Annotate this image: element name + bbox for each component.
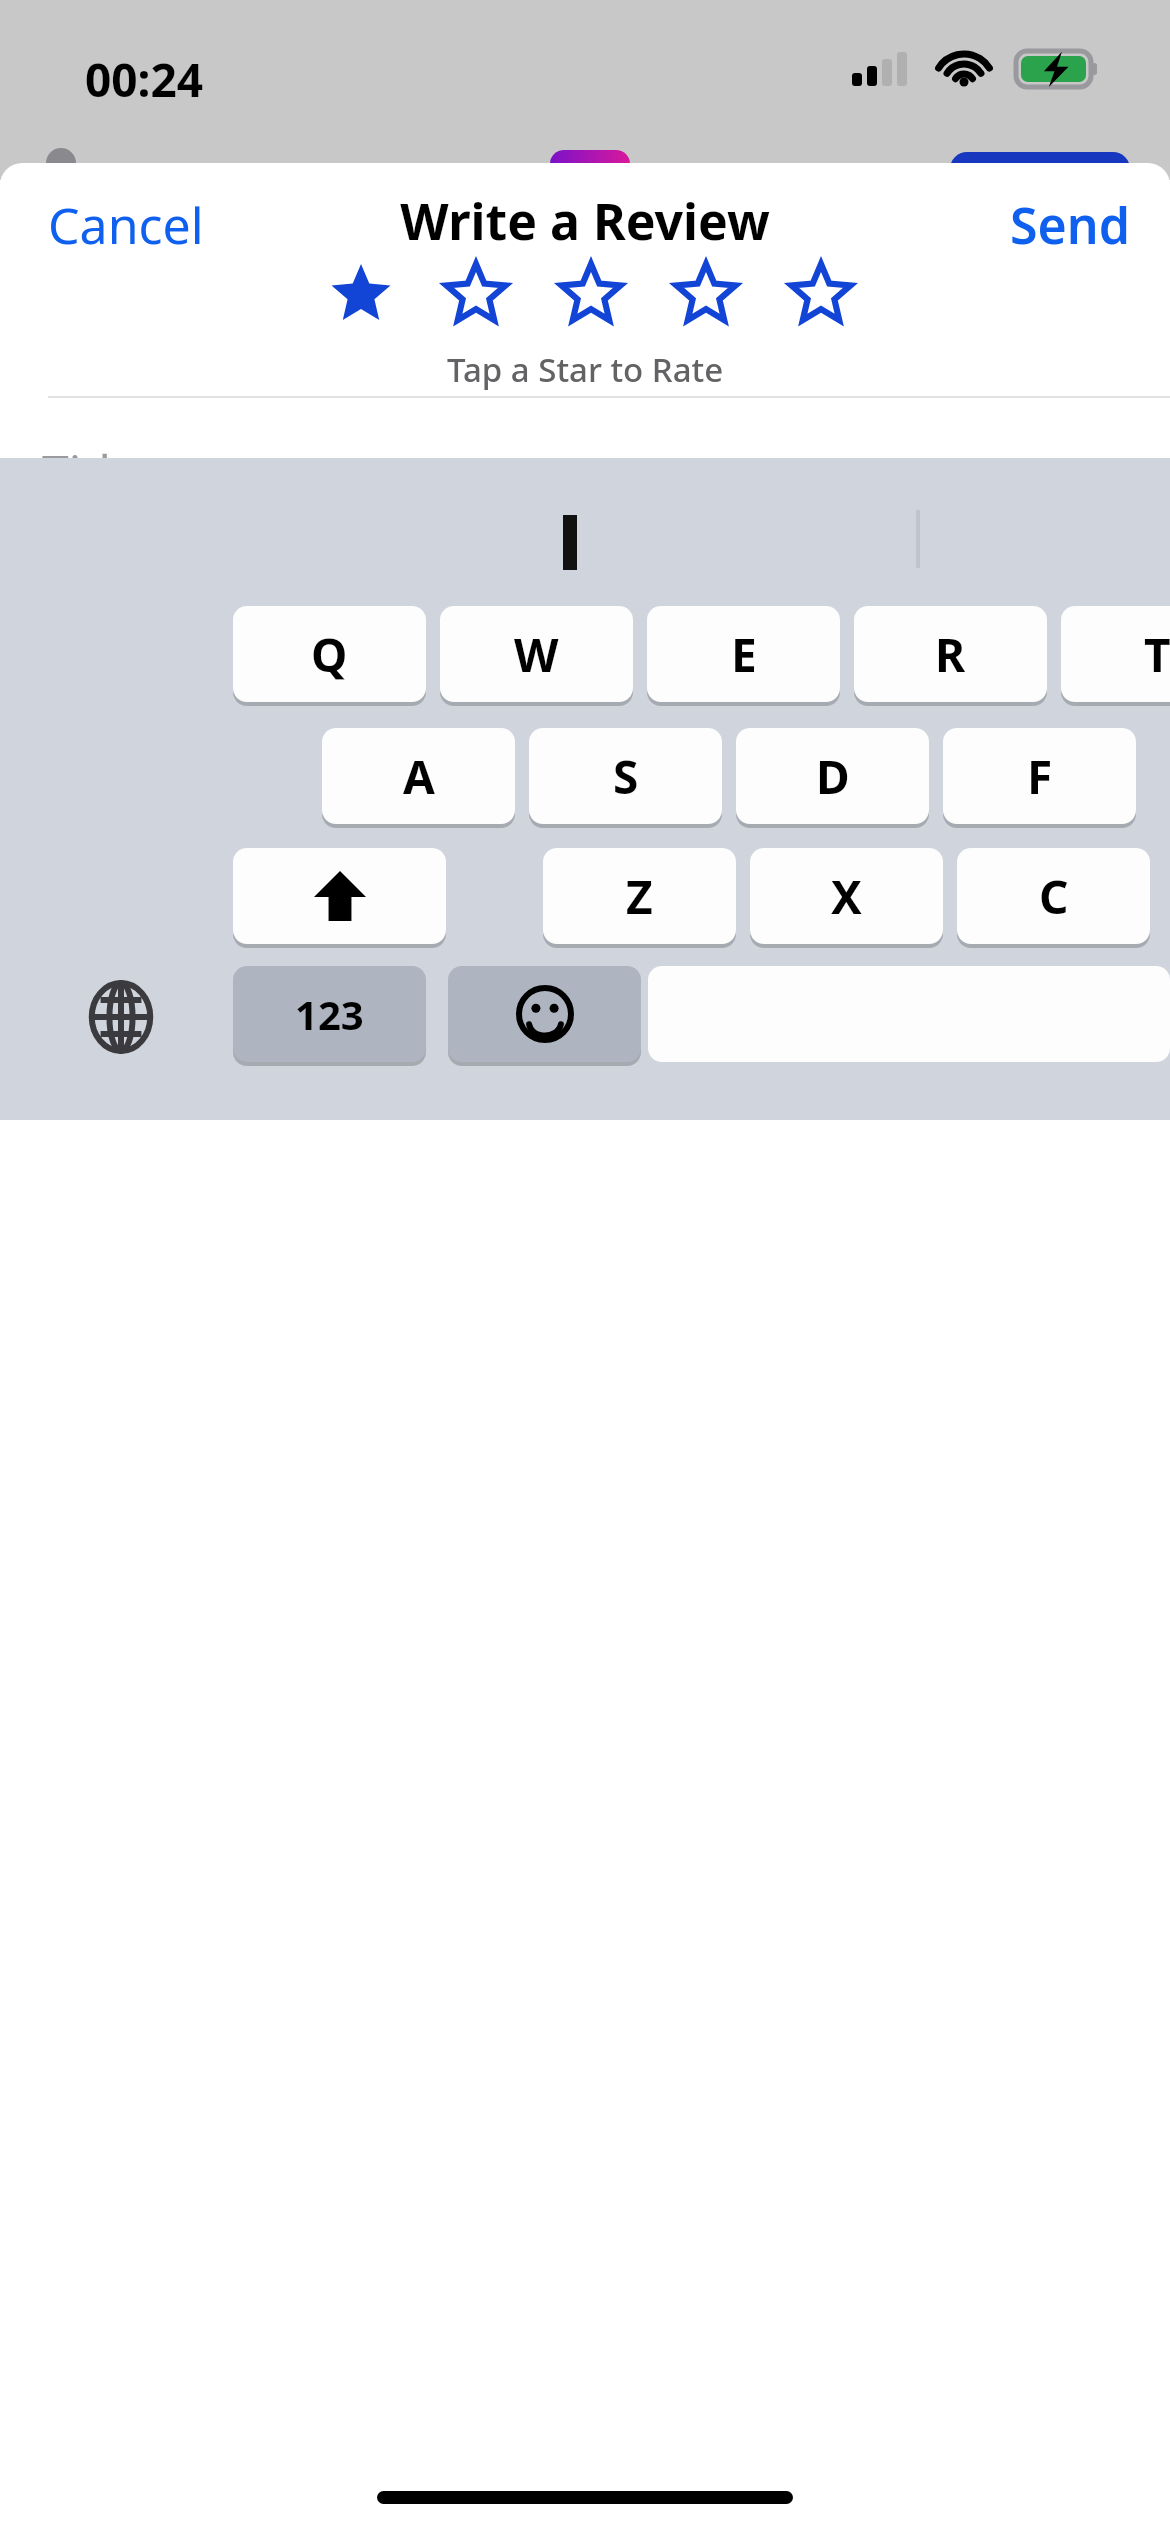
button[interactable]: X bbox=[750, 848, 943, 944]
staticText: X bbox=[831, 865, 862, 928]
button[interactable]: Rate 2 star bbox=[427, 249, 525, 341]
button[interactable]: R bbox=[854, 606, 1047, 702]
button[interactable]: T bbox=[1061, 606, 1170, 702]
button[interactable]: Emoji bbox=[448, 966, 641, 1062]
staticText: C bbox=[1039, 865, 1069, 928]
staticText: Cancel bbox=[48, 191, 204, 259]
staticText: 00:24 bbox=[85, 48, 204, 111]
staticText: Tap a Star to Rate bbox=[447, 347, 724, 392]
staticText: A bbox=[403, 745, 435, 808]
button[interactable]: W bbox=[440, 606, 633, 702]
button[interactable]: Rate 3 star bbox=[542, 249, 640, 341]
staticText: Title bbox=[42, 439, 138, 504]
staticText: 123 bbox=[295, 987, 364, 1041]
staticText: S bbox=[613, 745, 639, 808]
button[interactable]: D bbox=[736, 728, 929, 824]
staticText: Write a Review bbox=[400, 187, 770, 255]
button[interactable]: Q bbox=[233, 606, 426, 702]
staticText: F bbox=[1027, 745, 1053, 808]
staticText: Send bbox=[1010, 191, 1130, 259]
button[interactable]: Title bbox=[0, 396, 1170, 516]
button[interactable]: Z bbox=[543, 848, 736, 944]
button[interactable]: Cancel bbox=[40, 185, 212, 265]
staticText: Z bbox=[626, 865, 653, 928]
button[interactable]: Change keyboard language bbox=[78, 974, 164, 1060]
button[interactable]: 123 bbox=[233, 966, 426, 1062]
button[interactable]: Send bbox=[1002, 185, 1138, 265]
staticText: R bbox=[935, 623, 966, 686]
button[interactable]: F bbox=[943, 728, 1136, 824]
staticText: W bbox=[514, 623, 559, 686]
button[interactable]: A bbox=[322, 728, 515, 824]
button[interactable]: Rate 4 star bbox=[657, 249, 755, 341]
button[interactable]: Rate 1 star bbox=[312, 249, 410, 341]
button[interactable]: E bbox=[647, 606, 840, 702]
staticText: T bbox=[1144, 623, 1170, 686]
button[interactable]: Shift bbox=[233, 848, 446, 944]
staticText: D bbox=[816, 745, 850, 808]
button[interactable]: Rate 5 star bbox=[772, 249, 870, 341]
button[interactable]: C bbox=[957, 848, 1150, 944]
staticText: E bbox=[731, 623, 757, 686]
button[interactable]: S bbox=[529, 728, 722, 824]
staticText: Q bbox=[311, 623, 348, 686]
